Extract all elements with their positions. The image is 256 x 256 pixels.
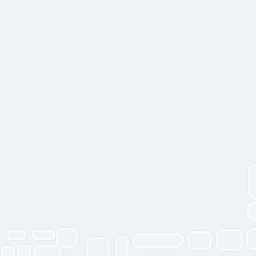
button[interactable]: Key — [32, 230, 55, 240]
button[interactable]: Key — [56, 228, 78, 248]
button[interactable]: Key — [216, 229, 243, 251]
button[interactable]: Key — [33, 245, 62, 256]
button[interactable]: Dial — [247, 202, 256, 219]
button[interactable]: Key — [248, 164, 256, 200]
button[interactable]: Key — [1, 246, 15, 256]
button[interactable]: Key — [17, 245, 31, 256]
button[interactable]: Key — [115, 236, 129, 256]
button[interactable]: Key — [132, 233, 184, 248]
button[interactable]: Key — [86, 237, 110, 256]
button[interactable]: Key — [7, 230, 26, 240]
button[interactable]: Key — [246, 228, 256, 250]
button[interactable]: Key — [187, 231, 212, 250]
